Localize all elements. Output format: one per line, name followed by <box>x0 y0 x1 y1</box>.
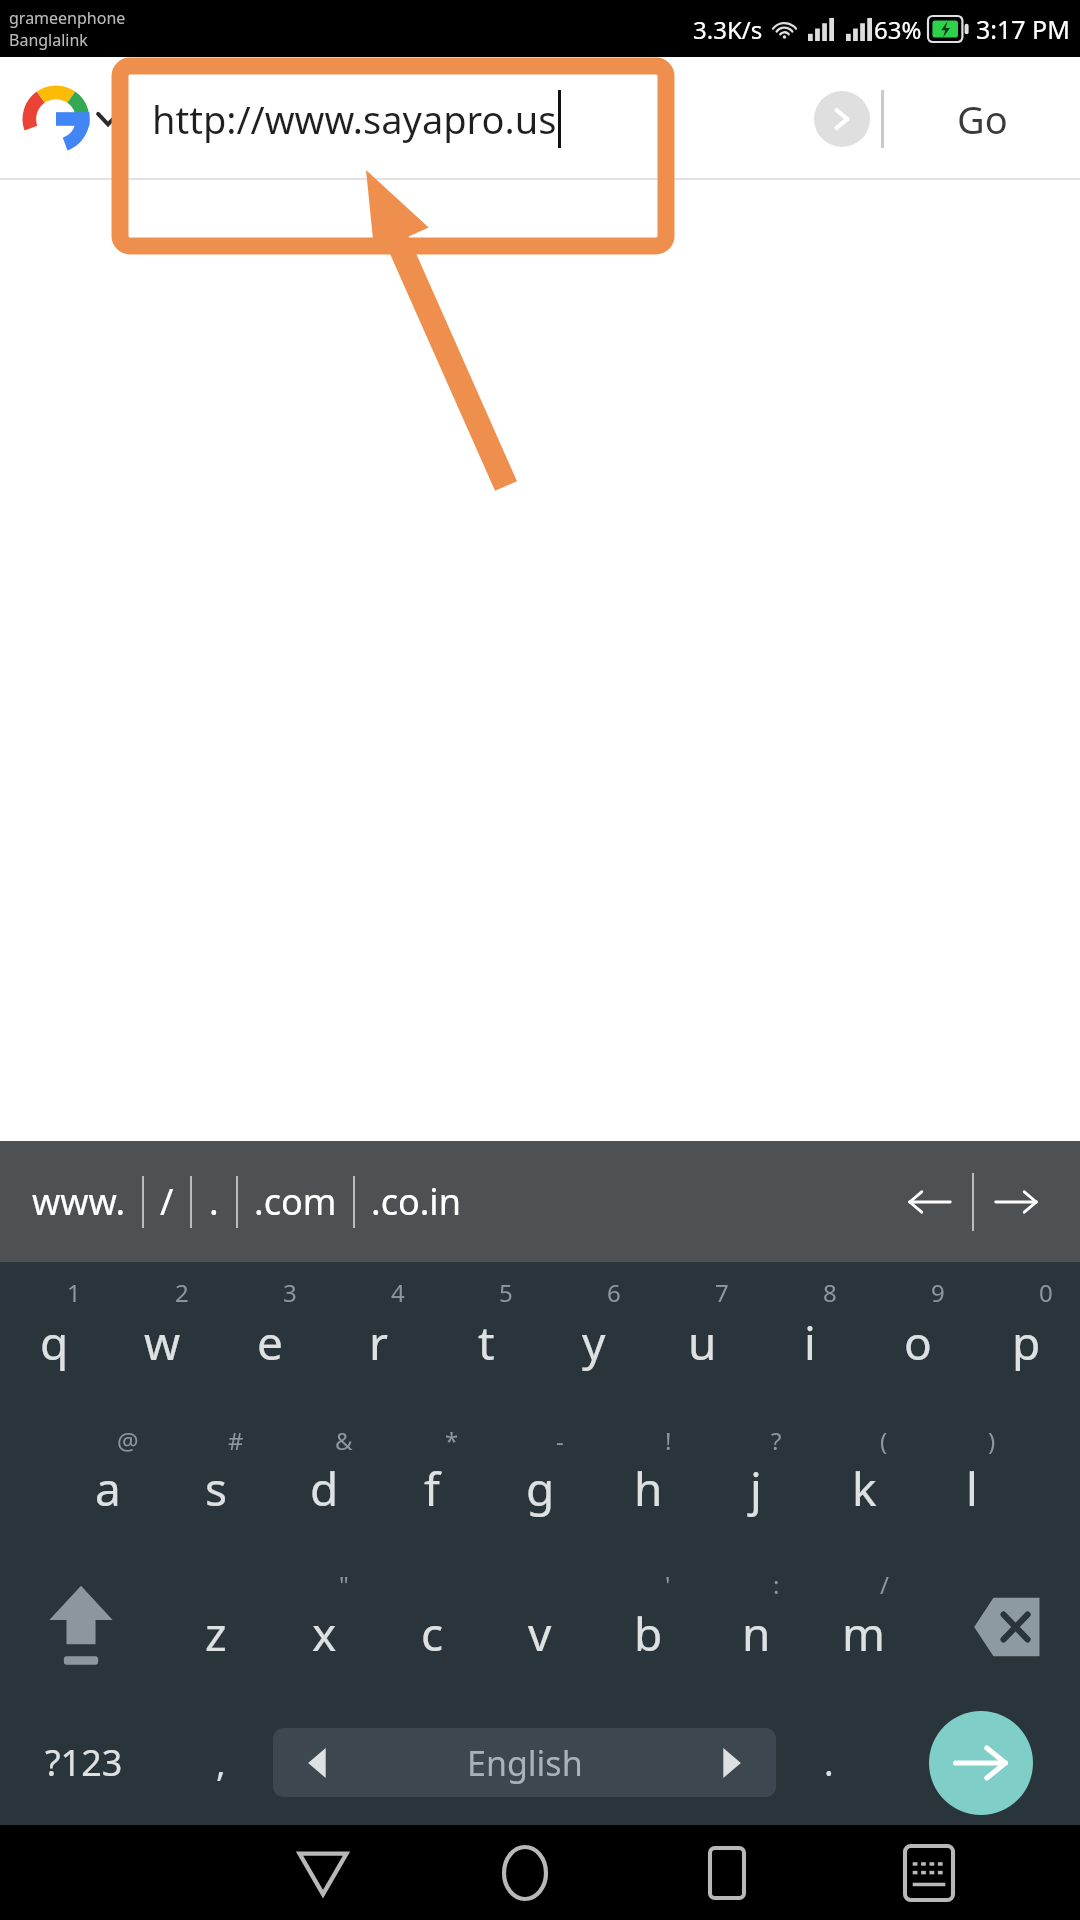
staticText: 5 <box>499 1276 513 1309</box>
button[interactable]: 0 <box>972 1262 1080 1410</box>
staticText: , <box>216 1738 226 1787</box>
button[interactable]: .co.in <box>355 1141 477 1262</box>
staticText: 0 <box>1039 1276 1053 1309</box>
staticText: * <box>445 1424 459 1457</box>
staticText: i <box>804 1311 816 1374</box>
button[interactable]: Choose search engine <box>88 99 128 139</box>
staticText: f <box>424 1457 440 1520</box>
staticText: . <box>209 1177 219 1226</box>
staticText: ! <box>665 1424 672 1457</box>
button[interactable]: 9 <box>864 1262 972 1410</box>
button[interactable]: Back <box>222 1825 424 1920</box>
staticText: x <box>312 1602 337 1665</box>
button[interactable]: z <box>162 1554 270 1700</box>
staticText: & <box>335 1424 353 1457</box>
staticText: Banglalink <box>9 29 88 51</box>
staticText: @ <box>117 1424 139 1457</box>
staticText: .co.in <box>371 1177 461 1226</box>
button[interactable]: # <box>162 1410 270 1554</box>
staticText: : <box>773 1568 780 1601</box>
button[interactable]: http://www.sayapro.us <box>152 57 803 180</box>
button[interactable]: v <box>486 1554 594 1700</box>
button[interactable]: @ <box>54 1410 162 1554</box>
button[interactable]: 5 <box>432 1262 540 1410</box>
button[interactable]: ?123 <box>0 1700 168 1825</box>
button[interactable]: " <box>270 1554 378 1700</box>
button[interactable]: . <box>776 1700 881 1825</box>
staticText: 3.3K/s <box>693 13 763 46</box>
staticText: t <box>478 1311 495 1374</box>
button[interactable]: ) <box>918 1410 1026 1554</box>
staticText: c <box>421 1602 444 1665</box>
button[interactable]: . <box>192 1141 236 1262</box>
staticText: 9 <box>931 1276 945 1309</box>
staticText: y <box>582 1311 606 1374</box>
staticText: z <box>205 1602 227 1665</box>
staticText: 3:17 PM <box>976 12 1070 46</box>
button[interactable]: Recents <box>626 1825 828 1920</box>
staticText: - <box>556 1424 564 1457</box>
button[interactable]: .com <box>238 1141 353 1262</box>
staticText: Go <box>957 93 1008 145</box>
button[interactable]: : <box>702 1554 810 1700</box>
button[interactable]: * <box>378 1410 486 1554</box>
button[interactable]: & <box>270 1410 378 1554</box>
button[interactable]: c <box>378 1554 486 1700</box>
button[interactable]: Hide keyboard <box>828 1825 1030 1920</box>
button[interactable]: Clear <box>803 80 881 158</box>
staticText: English <box>467 1740 583 1786</box>
staticText: 7 <box>715 1276 729 1309</box>
staticText: . <box>824 1738 834 1787</box>
button[interactable]: 1 <box>0 1262 108 1410</box>
staticText: h <box>634 1457 663 1520</box>
staticText: grameenphone <box>9 7 126 29</box>
staticText: n <box>742 1602 771 1665</box>
staticText: k <box>852 1457 877 1520</box>
button[interactable]: ' <box>594 1554 702 1700</box>
staticText: v <box>528 1602 552 1665</box>
button[interactable]: / <box>810 1554 918 1700</box>
staticText: 63% <box>874 13 922 46</box>
staticText: # <box>228 1424 244 1457</box>
button[interactable]: 8 <box>756 1262 864 1410</box>
button[interactable]: , <box>168 1700 273 1825</box>
staticText: e <box>257 1311 283 1374</box>
button[interactable]: Home <box>424 1825 626 1920</box>
button[interactable]: Next <box>974 1152 1058 1252</box>
button[interactable]: / <box>144 1141 190 1262</box>
staticText: .com <box>254 1177 337 1226</box>
staticText: q <box>40 1311 69 1374</box>
staticText: 4 <box>391 1276 405 1309</box>
staticText: ' <box>665 1568 671 1601</box>
button[interactable]: Search engine <box>24 87 88 151</box>
staticText: o <box>904 1311 932 1374</box>
staticText: 8 <box>823 1276 837 1309</box>
button[interactable]: 7 <box>648 1262 756 1410</box>
button[interactable]: 6 <box>540 1262 648 1410</box>
staticText: " <box>339 1568 349 1601</box>
staticText: ) <box>988 1424 996 1457</box>
button[interactable]: Go <box>884 57 1080 180</box>
staticText: www. <box>32 1177 126 1226</box>
button[interactable]: Shift <box>0 1554 162 1700</box>
button[interactable]: Previous <box>888 1152 972 1252</box>
staticText: ?123 <box>45 1738 123 1787</box>
button[interactable]: ( <box>810 1410 918 1554</box>
staticText: 3 <box>283 1276 297 1309</box>
button[interactable]: Space, English <box>273 1728 776 1797</box>
button[interactable]: www. <box>16 1141 142 1262</box>
button[interactable]: Backspace <box>918 1554 1080 1700</box>
button[interactable]: 2 <box>108 1262 216 1410</box>
staticText: a <box>95 1457 121 1520</box>
button[interactable]: Enter <box>881 1700 1080 1825</box>
button[interactable]: 3 <box>216 1262 324 1410</box>
staticText: l <box>966 1457 978 1520</box>
staticText: r <box>369 1311 388 1374</box>
staticText: u <box>688 1311 717 1374</box>
staticText: / <box>160 1177 174 1226</box>
button[interactable]: ? <box>702 1410 810 1554</box>
button[interactable]: - <box>486 1410 594 1554</box>
button[interactable]: 4 <box>324 1262 432 1410</box>
button[interactable]: ! <box>594 1410 702 1554</box>
staticText: j <box>750 1457 762 1520</box>
